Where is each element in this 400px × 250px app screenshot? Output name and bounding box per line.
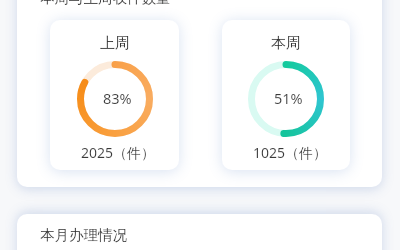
button[interactable]: 上周 <box>50 20 179 170</box>
staticText: 2025（件） <box>81 143 156 162</box>
staticText: 上周 <box>100 34 130 53</box>
staticText: 51% <box>274 88 303 108</box>
staticText: 本月办理情况 <box>40 226 127 244</box>
staticText: 本周与上周收件数量 <box>40 0 171 7</box>
staticText: 83% <box>103 88 132 108</box>
button[interactable]: 本周 <box>222 20 350 170</box>
staticText: 本周 <box>271 34 301 53</box>
staticText: 1025（件） <box>253 143 328 162</box>
